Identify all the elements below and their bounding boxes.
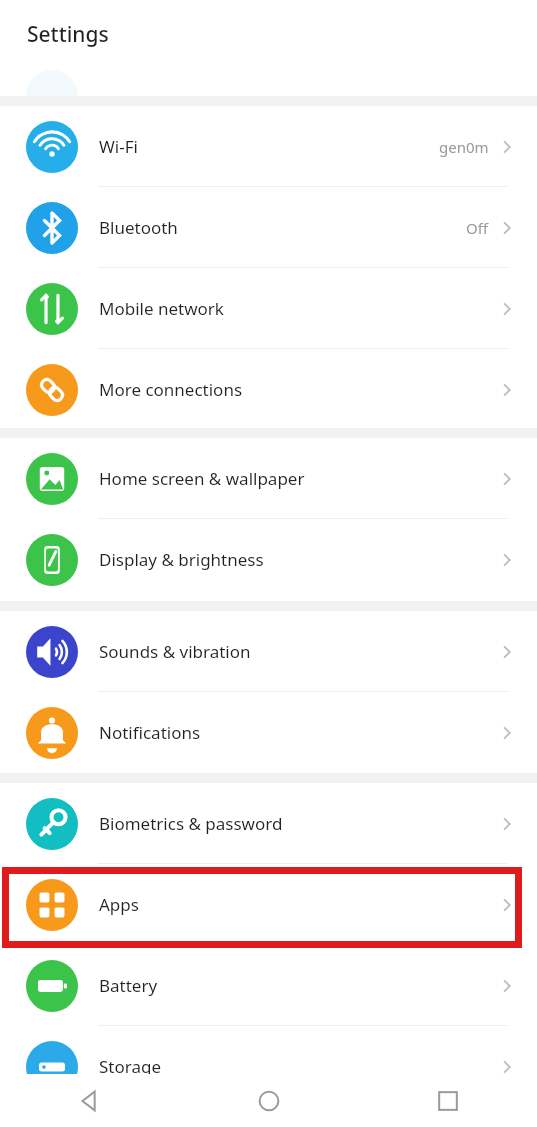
button[interactable]: More connections (0, 349, 537, 430)
staticText: Mobile network (99, 297, 224, 320)
staticText: Wi-Fi (99, 135, 138, 158)
button[interactable]: Storage (0, 1026, 537, 1107)
button[interactable]: Home screen & wallpaper (0, 438, 537, 519)
staticText: Sounds & vibration (99, 640, 251, 663)
staticText: Off (466, 218, 489, 238)
staticText: Apps (99, 893, 139, 916)
button[interactable]: Mobile network (0, 268, 537, 349)
button[interactable]: Apps (0, 864, 537, 945)
staticText: Biometrics & password (99, 812, 283, 835)
staticText: Settings (27, 20, 109, 49)
button[interactable]: Notifications (0, 692, 537, 773)
button[interactable]: Sounds & vibration (0, 611, 537, 692)
staticText: Notifications (99, 721, 201, 744)
staticText: Bluetooth (99, 216, 178, 239)
button[interactable]: Display & brightness (0, 519, 537, 600)
staticText: Storage (99, 1055, 162, 1078)
button[interactable]: Home (179, 1074, 358, 1127)
button[interactable]: Wi-Fi (0, 106, 537, 187)
button[interactable]: Recents (358, 1074, 537, 1127)
staticText: More connections (99, 378, 243, 401)
button[interactable]: Battery (0, 945, 537, 1026)
button[interactable]: Bluetooth (0, 187, 537, 268)
staticText: Display & brightness (99, 548, 264, 571)
button[interactable]: Back (0, 1074, 179, 1127)
staticText: Battery (99, 974, 158, 997)
staticText: Home screen & wallpaper (99, 467, 305, 490)
staticText: gen0m (439, 137, 489, 157)
button[interactable]: Biometrics & password (0, 783, 537, 864)
